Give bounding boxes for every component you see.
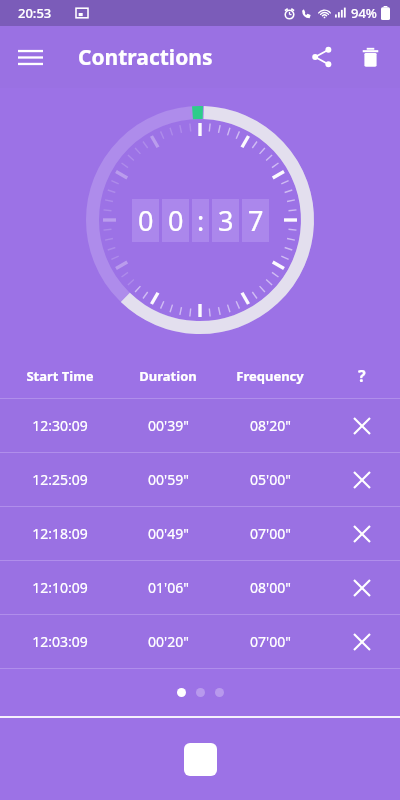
staticText: 12:03:09: [32, 632, 88, 651]
staticText: Contractions: [78, 43, 213, 72]
staticText: 20:53: [18, 4, 52, 22]
staticText: 12:18:09: [32, 524, 88, 543]
button[interactable]: 12:25:09: [0, 453, 400, 506]
button[interactable]: 12:18:09: [0, 507, 400, 560]
staticText: ?: [358, 365, 366, 387]
staticText: 7: [248, 202, 264, 239]
staticText: 00'39": [148, 416, 189, 435]
staticText: 3: [218, 202, 234, 239]
staticText: 00'59": [148, 470, 189, 489]
button[interactable]: Delete entry: [324, 453, 400, 506]
staticText: 12:10:09: [32, 578, 88, 597]
staticText: Duration: [139, 367, 197, 385]
staticText: 00'20": [148, 632, 189, 651]
button[interactable]: Menu: [6, 33, 54, 81]
button[interactable]: Share: [298, 33, 346, 81]
button[interactable]: Page 3: [215, 688, 224, 697]
button[interactable]: Help: [324, 354, 400, 398]
staticText: 00'49": [148, 524, 189, 543]
staticText: 08'20": [250, 416, 291, 435]
staticText: 05'00": [250, 470, 291, 489]
staticText: 12:30:09: [32, 416, 88, 435]
staticText: 08'00": [250, 578, 291, 597]
staticText: 0: [168, 202, 184, 239]
staticText: 07'00": [250, 524, 291, 543]
staticText: Frequency: [236, 367, 304, 385]
staticText: Start Time: [26, 367, 94, 385]
button[interactable]: Delete entry: [324, 615, 400, 668]
button[interactable]: 12:10:09: [0, 561, 400, 614]
button[interactable]: Delete all: [346, 33, 394, 81]
button[interactable]: Page 2: [196, 688, 205, 697]
button[interactable]: Delete entry: [324, 507, 400, 560]
button[interactable]: 12:03:09: [0, 615, 400, 668]
staticText: 01'06": [148, 578, 189, 597]
staticText: 12:25:09: [32, 470, 88, 489]
button[interactable]: Page 1: [177, 688, 186, 697]
staticText: 0: [138, 202, 154, 239]
staticText: 94%: [351, 4, 377, 22]
button[interactable]: Delete entry: [324, 561, 400, 614]
staticText: 07'00": [250, 632, 291, 651]
button[interactable]: Stop timer: [184, 743, 217, 776]
button[interactable]: 12:30:09: [0, 399, 400, 452]
button[interactable]: Delete entry: [324, 399, 400, 452]
staticText: :: [197, 202, 205, 239]
